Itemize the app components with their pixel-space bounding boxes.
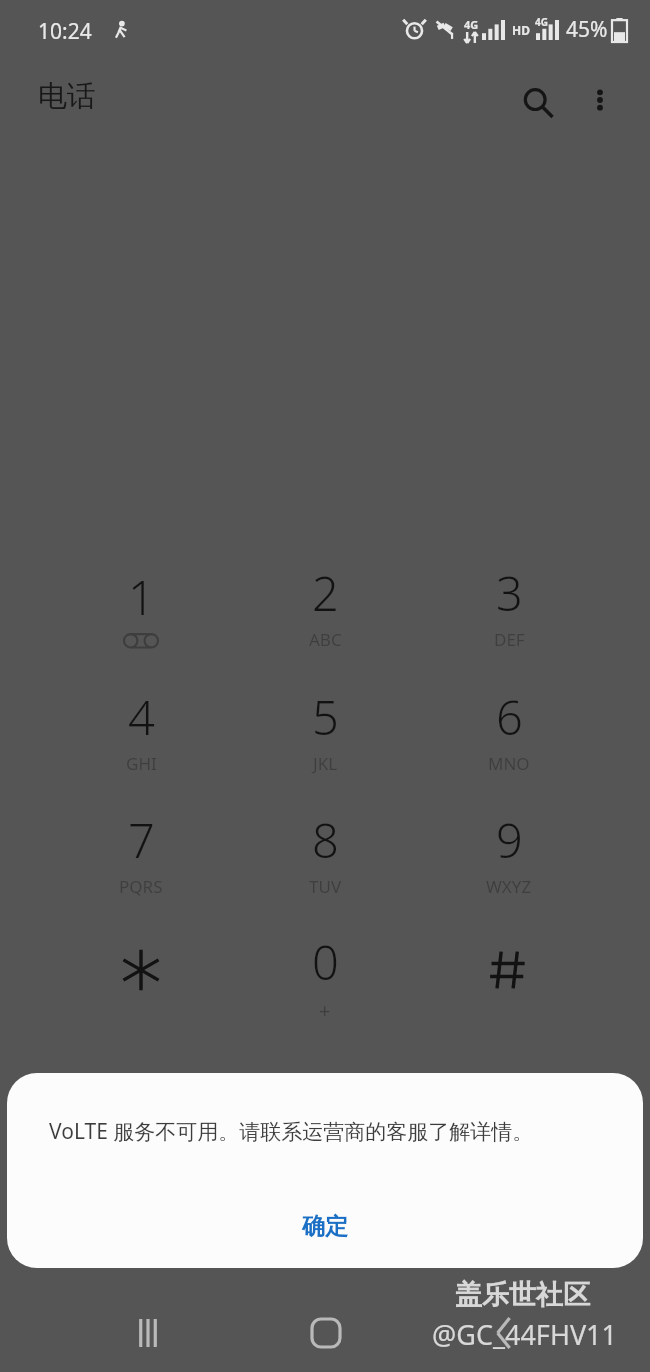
button[interactable]: 7 bbox=[61, 794, 221, 912]
staticText: WXYZ bbox=[486, 875, 532, 898]
staticText: 9 bbox=[496, 808, 523, 872]
button[interactable]: 5 bbox=[245, 671, 405, 789]
staticText: 盖乐世社区 bbox=[455, 1278, 590, 1312]
button[interactable]: Recents bbox=[108, 1300, 188, 1366]
button[interactable]: 1 bbox=[61, 547, 221, 665]
staticText: 4G bbox=[535, 15, 548, 29]
button[interactable]: 9 bbox=[429, 794, 589, 912]
button[interactable]: Search bbox=[509, 74, 565, 130]
staticText: 3 bbox=[496, 561, 523, 625]
staticText: 1 bbox=[128, 565, 155, 629]
staticText: 4 bbox=[128, 685, 155, 749]
button[interactable]: 0 bbox=[245, 918, 405, 1036]
staticText: GHI bbox=[126, 752, 157, 775]
button[interactable]: 8 bbox=[245, 794, 405, 912]
staticText: 6 bbox=[496, 685, 523, 749]
staticText: 2 bbox=[312, 561, 339, 625]
staticText: 4G bbox=[464, 17, 479, 32]
button[interactable] bbox=[429, 918, 589, 1036]
staticText: DEF bbox=[494, 628, 525, 651]
staticText: HD bbox=[512, 22, 530, 38]
staticText: 确定 bbox=[302, 1212, 348, 1241]
button[interactable]: 4 bbox=[61, 671, 221, 789]
button[interactable]: 3 bbox=[429, 547, 589, 665]
staticText: TUV bbox=[309, 875, 342, 898]
staticText: PQRS bbox=[119, 875, 163, 898]
staticText: 7 bbox=[128, 808, 155, 872]
button[interactable]: More options bbox=[574, 74, 626, 126]
staticText: MNO bbox=[488, 752, 530, 775]
button[interactable]: Home bbox=[286, 1300, 366, 1366]
button[interactable]: 2 bbox=[245, 547, 405, 665]
staticText: VoLTE 服务不可用。请联系运营商的客服了解详情。 bbox=[49, 1117, 534, 1146]
button[interactable] bbox=[61, 918, 221, 1036]
button[interactable]: Back bbox=[464, 1300, 544, 1366]
staticText: 8 bbox=[312, 808, 339, 872]
staticText: 5 bbox=[312, 685, 339, 749]
staticText: 10:24 bbox=[38, 17, 92, 46]
button[interactable]: 6 bbox=[429, 671, 589, 789]
staticText: 0 bbox=[312, 930, 339, 994]
staticText: 45% bbox=[566, 15, 608, 44]
staticText: + bbox=[319, 997, 331, 1024]
staticText: ABC bbox=[309, 628, 342, 651]
staticText: JKL bbox=[313, 752, 338, 775]
staticText: 电话 bbox=[38, 78, 96, 115]
staticText: @GC_44FHV11 bbox=[432, 1316, 617, 1353]
button[interactable]: 确定 bbox=[7, 1195, 643, 1257]
